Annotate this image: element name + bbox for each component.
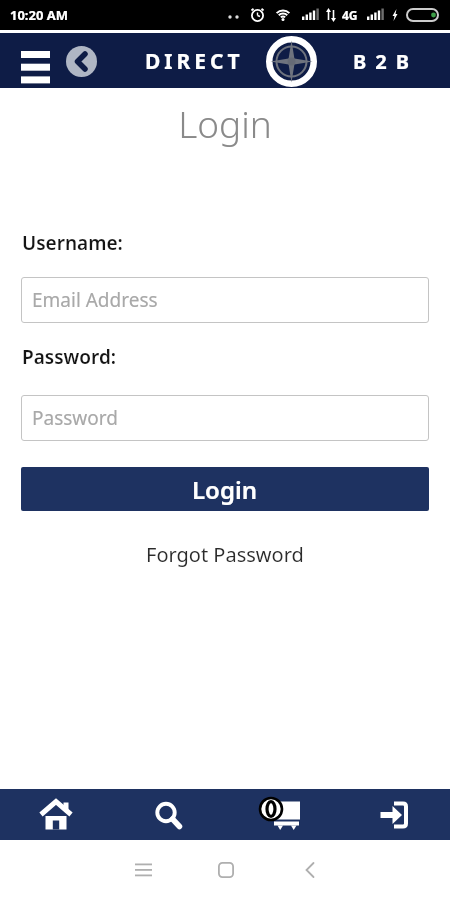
button[interactable] <box>112 789 224 840</box>
button[interactable] <box>0 789 112 840</box>
button[interactable]: Login <box>21 467 429 511</box>
button[interactable] <box>337 789 450 840</box>
staticText: Username: <box>22 230 123 256</box>
button[interactable] <box>224 789 337 840</box>
staticText: DIRECT <box>145 47 244 76</box>
button[interactable]: Forgot Password <box>146 541 304 568</box>
staticText: 10:20 AM <box>10 6 69 24</box>
staticText: Login <box>0 98 450 148</box>
button[interactable] <box>66 46 97 77</box>
button[interactable] <box>294 854 326 886</box>
button[interactable]: Password <box>21 395 429 441</box>
button[interactable] <box>210 854 242 886</box>
button[interactable] <box>14 50 56 84</box>
staticText: Login <box>192 473 258 506</box>
staticText: Password <box>32 405 118 431</box>
staticText: Forgot Password <box>146 541 304 568</box>
staticText: Password: <box>22 344 117 370</box>
button[interactable]: Email Address <box>21 277 429 323</box>
button[interactable] <box>266 36 317 87</box>
staticText: B2B <box>353 48 419 75</box>
button[interactable] <box>127 854 159 886</box>
staticText: 4G <box>342 7 358 23</box>
staticText: Email Address <box>32 287 158 313</box>
